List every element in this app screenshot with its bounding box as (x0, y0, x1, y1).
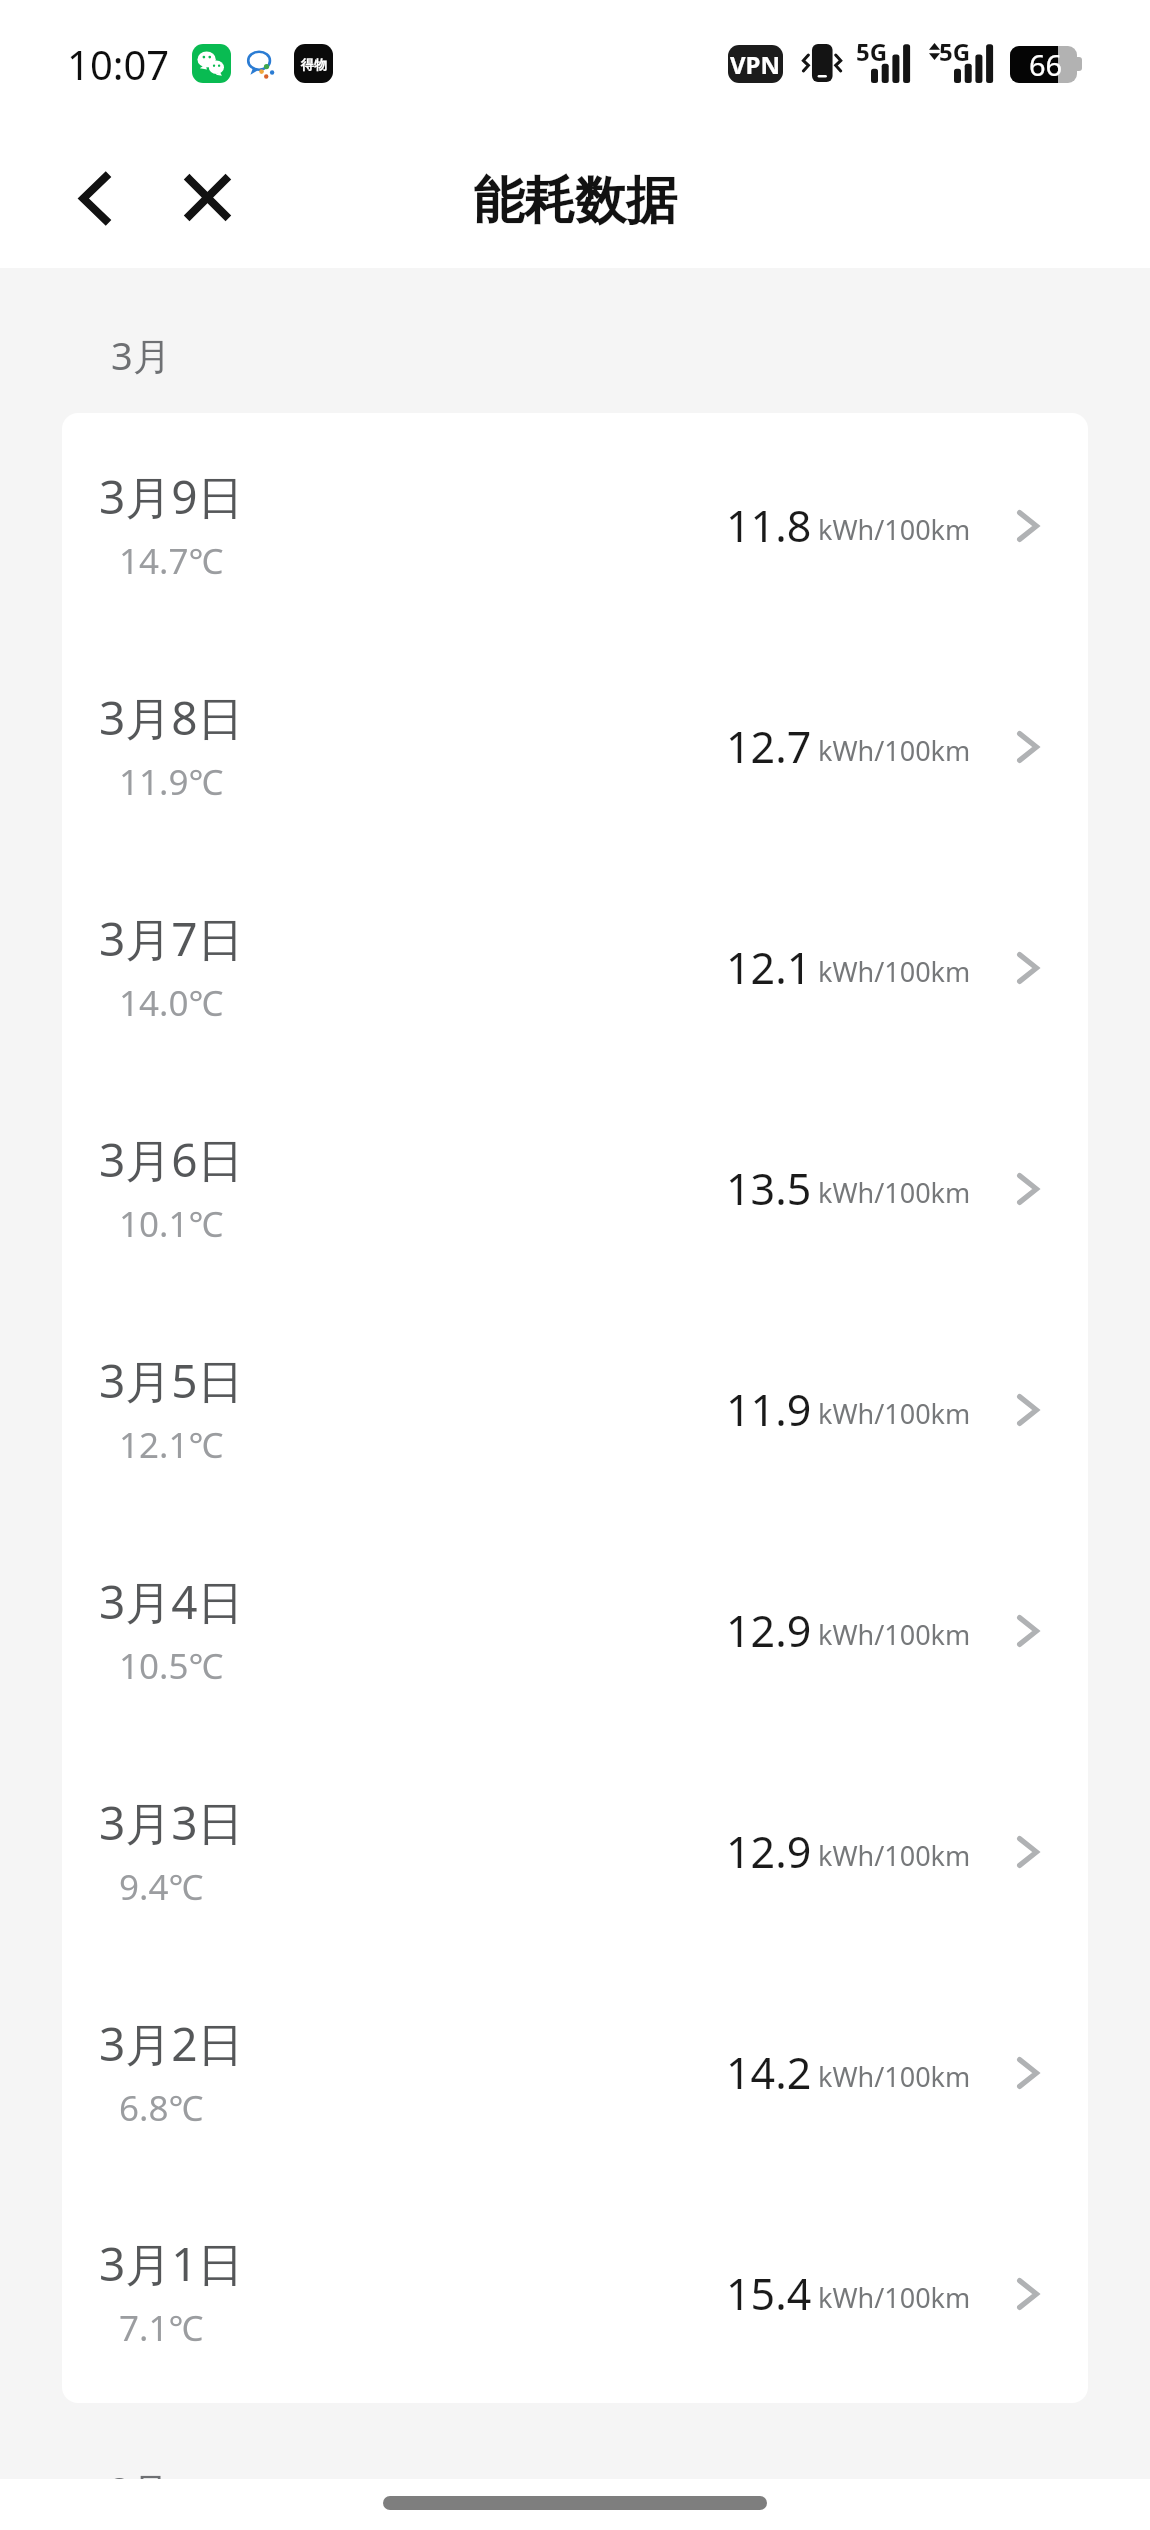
staticText: 5G (856, 35, 888, 68)
staticText: kWh/100km (818, 1395, 971, 1432)
staticText: 5G (939, 35, 971, 68)
button[interactable]: Close (163, 153, 251, 241)
staticText: 10.5℃ (119, 1642, 224, 1690)
staticText: kWh/100km (818, 511, 971, 548)
button[interactable]: 3月3日 9.4℃ 12.9 kWh/100km (62, 1741, 1088, 1962)
staticText: 能耗数据 (473, 169, 677, 233)
staticText: 3月3日 (99, 1791, 244, 1854)
staticText: kWh/100km (818, 732, 971, 769)
staticText: 3月 (111, 329, 171, 381)
staticText: 11.9℃ (119, 758, 224, 806)
staticText: 3月7日 (99, 907, 244, 970)
staticText: kWh/100km (818, 1616, 971, 1653)
button[interactable]: 3月1日 7.1℃ 15.4 kWh/100km (62, 2183, 1088, 2403)
staticText: kWh/100km (818, 1174, 971, 1211)
staticText: 12.9 (726, 1601, 812, 1660)
staticText: 3月1日 (99, 2232, 244, 2295)
staticText: kWh/100km (818, 953, 971, 990)
button[interactable]: 3月8日 11.9℃ 12.7 kWh/100km (62, 636, 1088, 857)
staticText: 11.8 (726, 496, 812, 555)
staticText: 6.8℃ (119, 2084, 204, 2132)
button[interactable]: 3月9日 14.7℃ 11.8 kWh/100km (62, 415, 1088, 636)
staticText: 11.9 (726, 1380, 812, 1439)
staticText: 3月9日 (99, 465, 244, 528)
staticText: 10.1℃ (119, 1200, 224, 1248)
staticText: 3月6日 (99, 1128, 244, 1191)
staticText: 3月5日 (99, 1349, 244, 1412)
staticText: 3月8日 (99, 686, 244, 749)
staticText: 14.2 (726, 2043, 812, 2102)
button[interactable]: 3月2日 6.8℃ 14.2 kWh/100km (62, 1962, 1088, 2183)
staticText: 12.9 (726, 1822, 812, 1881)
staticText: 13.5 (726, 1159, 812, 1218)
button[interactable]: 3月6日 10.1℃ 13.5 kWh/100km (62, 1078, 1088, 1299)
staticText: 12.7 (726, 717, 812, 776)
staticText: 15.4 (726, 2264, 812, 2323)
button[interactable]: 3月7日 14.0℃ 12.1 kWh/100km (62, 857, 1088, 1078)
staticText: 66 (1029, 46, 1063, 82)
button[interactable]: Back (50, 154, 138, 242)
button[interactable]: 3月5日 12.1℃ 11.9 kWh/100km (62, 1299, 1088, 1520)
staticText: 14.0℃ (119, 979, 224, 1027)
button[interactable]: 3月4日 10.5℃ 12.9 kWh/100km (62, 1520, 1088, 1741)
staticText: kWh/100km (818, 2279, 971, 2316)
staticText: kWh/100km (818, 2058, 971, 2095)
staticText: 得物 (301, 56, 327, 72)
staticText: 9.4℃ (119, 1863, 204, 1911)
staticText: 14.7℃ (119, 537, 224, 585)
staticText: 3月2日 (99, 2012, 244, 2075)
staticText: 7.1℃ (119, 2304, 204, 2352)
staticText: 12.1℃ (119, 1421, 224, 1469)
staticText: 12.1 (726, 938, 812, 997)
staticText: VPN (730, 48, 781, 81)
staticText: kWh/100km (818, 1837, 971, 1874)
staticText: 3月4日 (99, 1570, 244, 1633)
staticText: 2月 (109, 2464, 169, 2516)
staticText: 10:07 (67, 37, 170, 91)
